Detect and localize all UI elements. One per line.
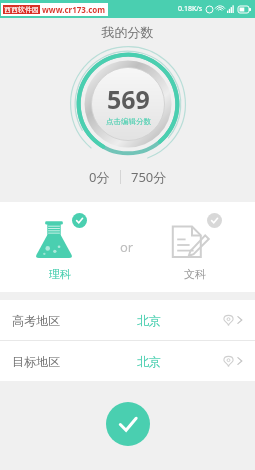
staticText: or — [120, 238, 134, 256]
staticText: 高考地区 — [12, 313, 60, 328]
staticText: www.cr173.com — [42, 4, 106, 15]
staticText: 点击编辑分数 — [106, 117, 151, 126]
staticText: 0分 — [89, 168, 110, 186]
staticText: 569 — [107, 82, 150, 116]
button[interactable]: 文科 — [164, 209, 226, 285]
button[interactable]: 目标地区 — [0, 341, 255, 381]
staticText: 北京 — [137, 313, 161, 328]
button[interactable]: 高考地区 — [0, 300, 255, 340]
button[interactable]: 确定 — [106, 402, 150, 446]
staticText: 北京 — [137, 354, 161, 369]
staticText: 目标地区 — [12, 354, 60, 369]
staticText: 750分 — [131, 168, 167, 186]
button[interactable]: 理科 — [29, 209, 91, 285]
staticText: 理科 — [49, 267, 71, 281]
staticText: 0.18K/s — [178, 4, 203, 14]
button[interactable]: 点击编辑分数 — [70, 46, 186, 162]
staticText: 西西软件园 — [4, 5, 39, 14]
staticText: 我的分数 — [0, 24, 255, 40]
staticText: 文科 — [184, 267, 206, 281]
